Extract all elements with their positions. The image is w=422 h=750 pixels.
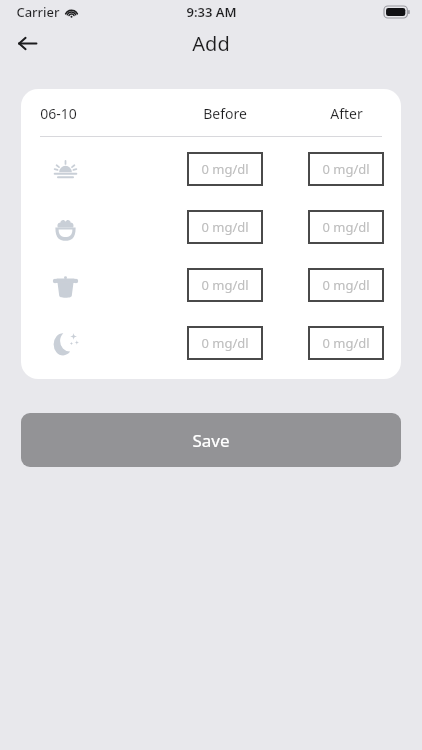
button[interactable]: Lunch before: [187, 210, 263, 244]
button[interactable]: Night before: [187, 326, 263, 360]
button[interactable]: Dinner before: [187, 268, 263, 302]
staticText: Add: [192, 30, 230, 57]
button[interactable]: Lunch after: [308, 210, 384, 244]
button[interactable]: Back: [9, 25, 45, 61]
button[interactable]: Night after: [308, 326, 384, 360]
staticText: 06-10: [40, 104, 77, 123]
button[interactable]: Dinner after: [308, 268, 384, 302]
staticText: Save: [192, 429, 230, 452]
staticText: 0 mg/dl: [201, 276, 249, 294]
staticText: 0 mg/dl: [201, 218, 249, 236]
staticText: After: [330, 104, 363, 123]
staticText: 0 mg/dl: [201, 334, 249, 352]
staticText: 9:33 AM: [186, 3, 237, 21]
staticText: 0 mg/dl: [201, 160, 249, 178]
button[interactable]: Morning before: [187, 152, 263, 186]
staticText: Before: [203, 104, 247, 123]
staticText: 0 mg/dl: [322, 334, 370, 352]
staticText: 0 mg/dl: [322, 218, 370, 236]
button[interactable]: Morning after: [308, 152, 384, 186]
staticText: 0 mg/dl: [322, 276, 370, 294]
button[interactable]: Save: [21, 413, 401, 467]
staticText: Carrier: [16, 3, 60, 21]
staticText: 0 mg/dl: [322, 160, 370, 178]
